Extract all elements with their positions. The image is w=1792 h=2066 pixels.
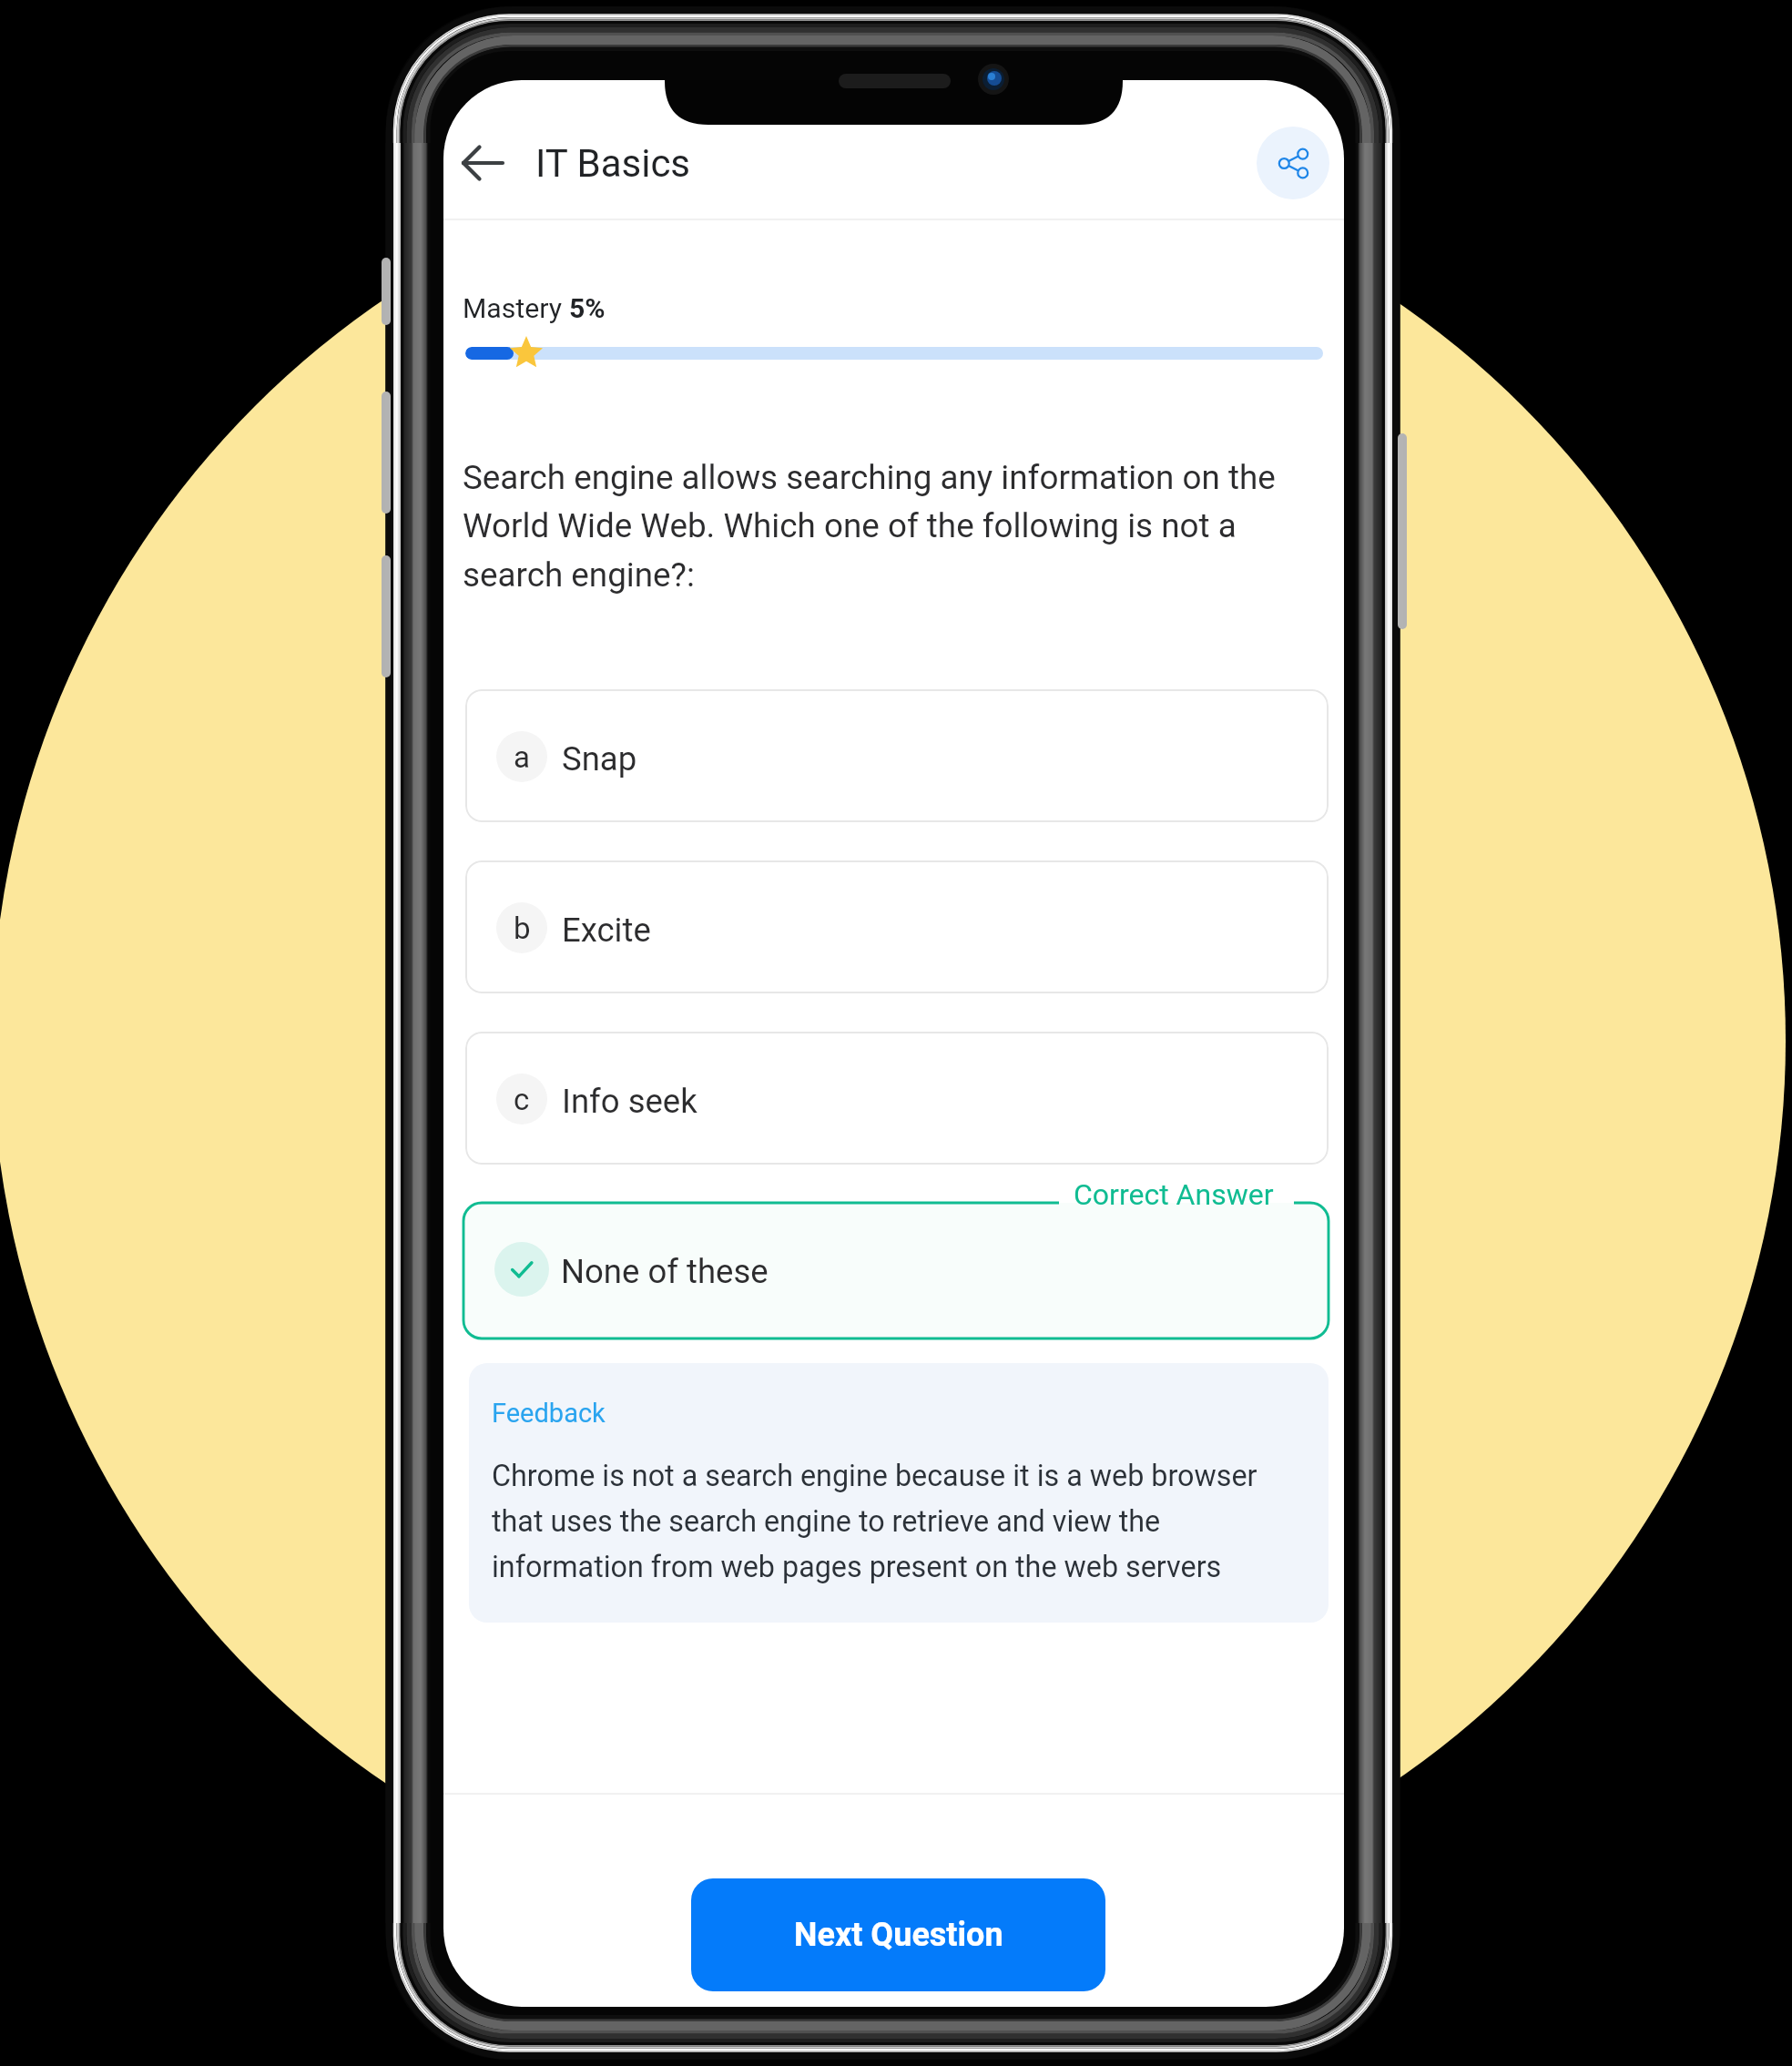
button[interactable]: Next Question bbox=[691, 1878, 1105, 1991]
staticText: Excite bbox=[562, 911, 651, 950]
staticText: Feedback bbox=[492, 1398, 606, 1429]
button[interactable]: Back bbox=[443, 123, 522, 203]
button[interactable]: c bbox=[465, 1032, 1329, 1165]
staticText: b bbox=[514, 911, 531, 946]
staticText: Search engine allows searching any infor… bbox=[463, 458, 1314, 595]
staticText: Info seek bbox=[562, 1082, 697, 1121]
staticText: Mastery bbox=[463, 292, 569, 324]
staticText: a bbox=[514, 739, 530, 775]
button[interactable]: a bbox=[465, 689, 1329, 822]
staticText: 5% bbox=[569, 292, 606, 324]
staticText: Next Question bbox=[794, 1916, 1003, 1954]
staticText: IT Basics bbox=[535, 141, 691, 186]
staticText: c bbox=[514, 1082, 530, 1117]
staticText: None of these bbox=[561, 1252, 769, 1291]
button[interactable]: b bbox=[465, 860, 1329, 993]
staticText: Snap bbox=[562, 739, 637, 779]
staticText: Correct Answer bbox=[1074, 1177, 1274, 1212]
button[interactable]: None of these bbox=[463, 1203, 1329, 1338]
button[interactable]: Share bbox=[1257, 127, 1329, 199]
staticText: Chrome is not a search engine because it… bbox=[492, 1459, 1288, 1583]
